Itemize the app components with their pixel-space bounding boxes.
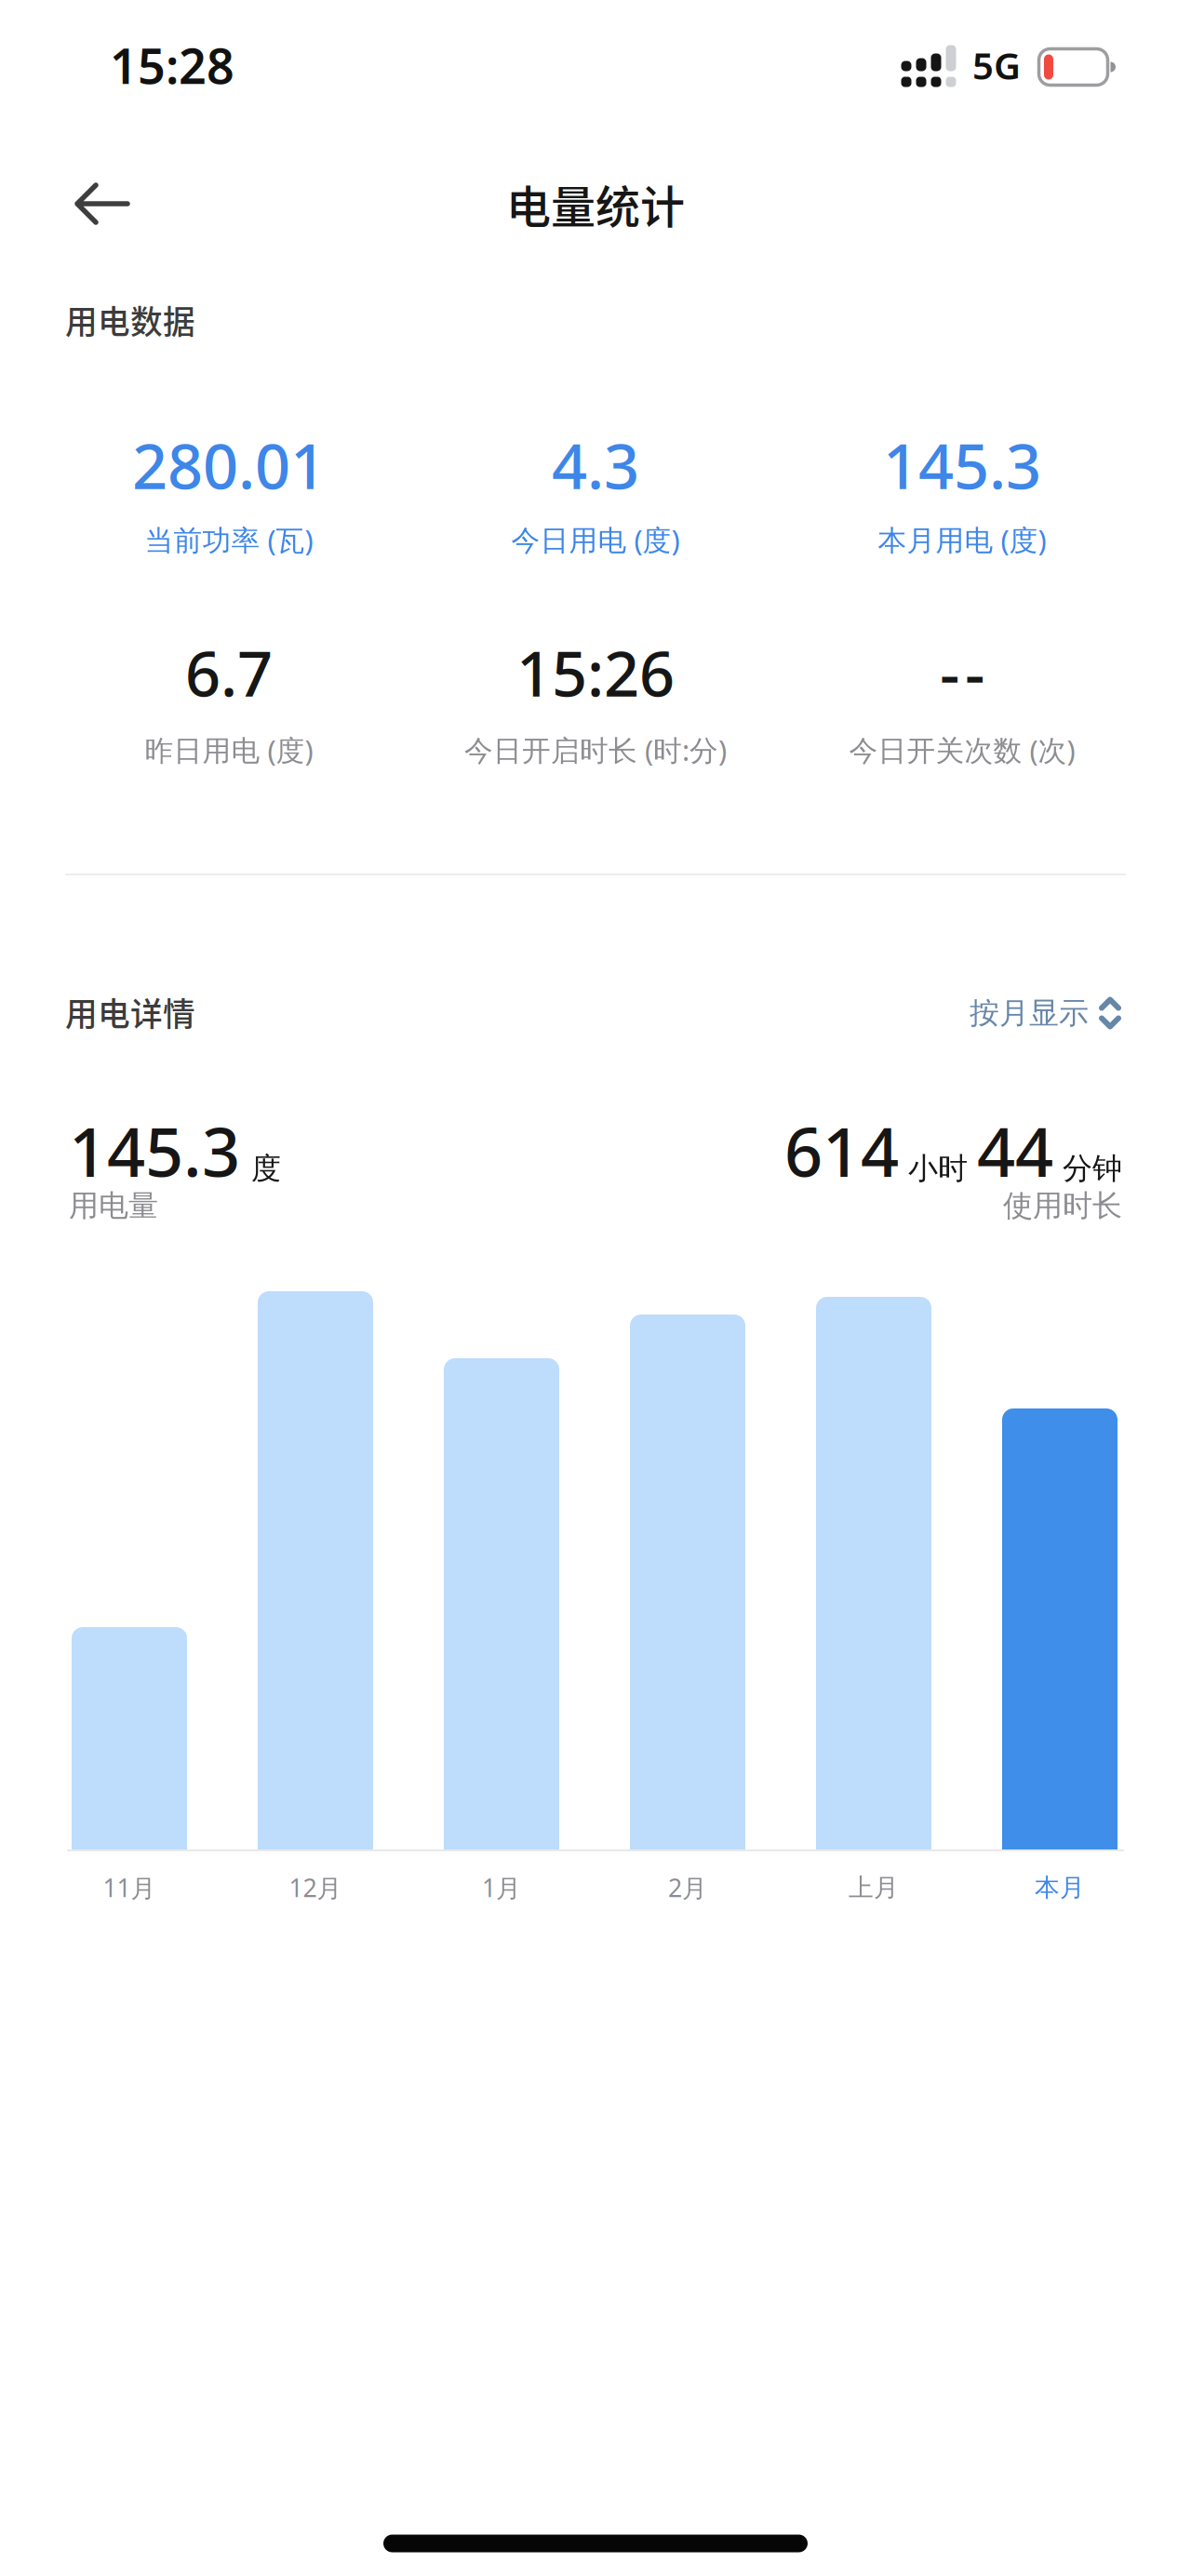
staticText: 用电量 xyxy=(69,1187,158,1224)
staticText: 11月 xyxy=(103,1871,156,1904)
button[interactable]: 按月显示 xyxy=(970,995,1122,1031)
staticText: 按月显示 xyxy=(970,995,1089,1031)
staticText: 今日开启时长 (时:分) xyxy=(464,731,727,769)
staticText: 上月 xyxy=(849,1872,899,1903)
staticText: 昨日用电 (度) xyxy=(145,731,313,769)
staticText: 44 xyxy=(977,1106,1053,1195)
staticText: 145.3 xyxy=(69,1106,240,1195)
staticText: 小时 xyxy=(908,1150,968,1187)
staticText: 本月 xyxy=(1035,1872,1085,1903)
staticText: 使用时长 xyxy=(1003,1187,1122,1224)
staticText: 用电详情 xyxy=(65,989,195,1036)
staticText: 4.3 xyxy=(552,424,639,506)
staticText: 15:28 xyxy=(110,33,234,97)
staticText: 1月 xyxy=(482,1871,521,1904)
staticText: 5G xyxy=(972,40,1021,90)
staticText: 用电数据 xyxy=(65,297,195,343)
staticText: 614 xyxy=(784,1106,899,1195)
staticText: 今日开关次数 (次) xyxy=(849,731,1075,769)
staticText: 12月 xyxy=(289,1871,342,1904)
staticText: 6.7 xyxy=(185,631,273,714)
staticText: 分钟 xyxy=(1063,1150,1122,1187)
staticText: 15:26 xyxy=(516,631,675,714)
staticText: 2月 xyxy=(668,1871,707,1904)
staticText: 280.01 xyxy=(132,424,326,506)
button[interactable]: Back xyxy=(74,182,130,225)
staticText: -- xyxy=(940,631,984,714)
staticText: 145.3 xyxy=(883,424,1041,506)
staticText: 本月用电 (度) xyxy=(878,521,1046,558)
staticText: 度 xyxy=(251,1150,281,1187)
staticText: 今日用电 (度) xyxy=(511,521,680,558)
staticText: 当前功率 (瓦) xyxy=(145,521,313,558)
staticText: 电量统计 xyxy=(506,171,685,236)
